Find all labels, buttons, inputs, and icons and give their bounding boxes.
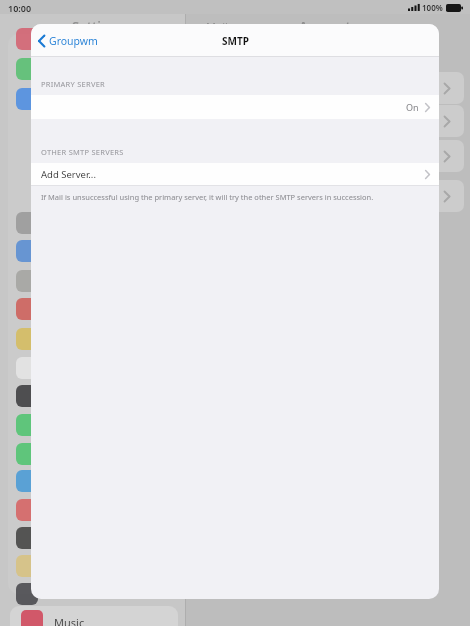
staticText: PRIMARY SERVER (41, 79, 105, 89)
staticText: Groupwm (49, 34, 98, 48)
staticText: Accounts (299, 17, 358, 35)
staticText: Add Server... (41, 168, 96, 181)
button[interactable]: Groupwm (31, 29, 108, 53)
staticText: On (406, 101, 419, 113)
other: Open (425, 170, 430, 179)
staticText: Settings (72, 17, 124, 35)
staticText: 10:00 (8, 2, 32, 14)
button[interactable]: On (31, 95, 439, 119)
staticText: OTHER SMTP SERVERS (41, 147, 124, 157)
staticText: 100% (422, 2, 443, 13)
staticText: Music (54, 615, 85, 626)
staticText: SMTP (222, 34, 249, 48)
staticText: Mail (206, 19, 228, 34)
button[interactable]: Add Server... (31, 163, 439, 186)
staticText: If Mail is unsuccessful using the primar… (41, 192, 374, 202)
other: Open (425, 103, 430, 112)
